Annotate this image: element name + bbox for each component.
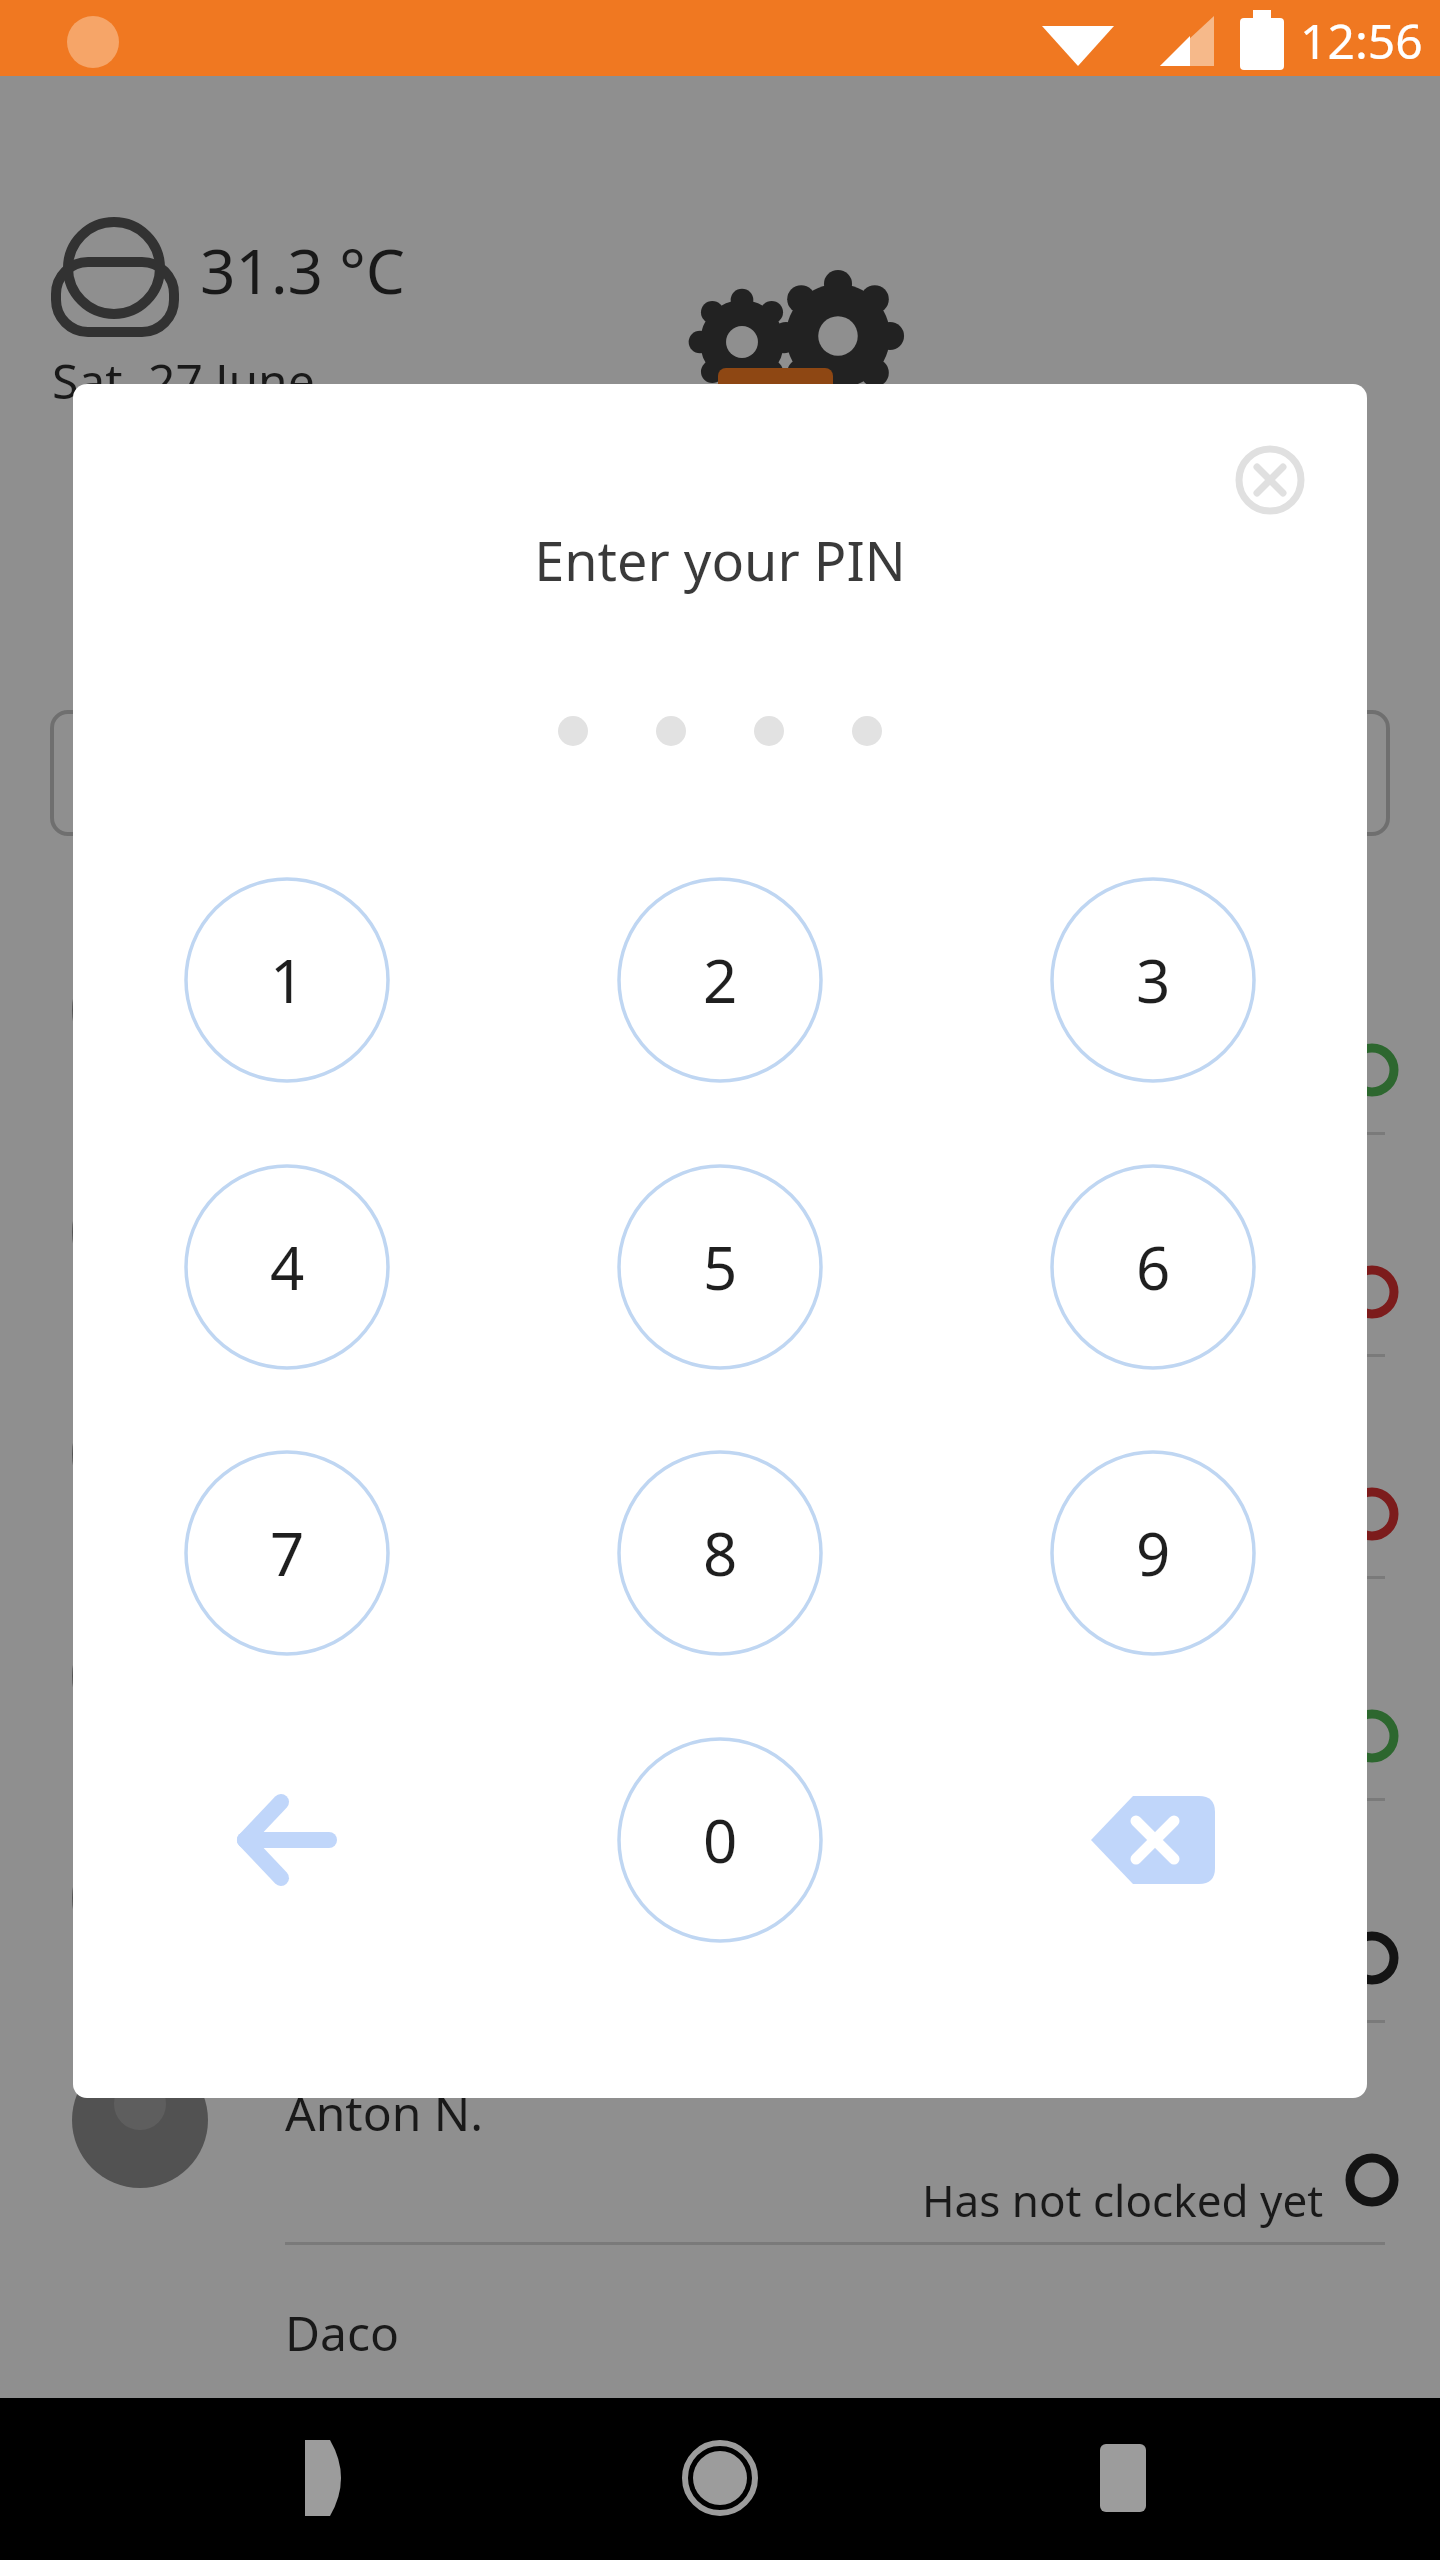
- staticText: Sat, 27 June: [52, 348, 315, 413]
- staticText: Enter your PIN: [534, 523, 906, 597]
- button[interactable]: Recents: [1000, 2398, 1240, 2560]
- staticText: 5: [703, 1226, 738, 1308]
- button[interactable]: 0: [619, 1739, 821, 1941]
- button[interactable]: Back: [186, 1739, 388, 1941]
- staticText: Has not clocked yet: [922, 2170, 1324, 2230]
- staticText: 3: [1136, 939, 1171, 1021]
- button[interactable]: 4: [186, 1166, 388, 1368]
- button[interactable]: 5: [619, 1166, 821, 1368]
- button[interactable]: 6: [1052, 1166, 1254, 1368]
- staticText: 6: [1136, 1226, 1171, 1308]
- button[interactable]: 2: [619, 879, 821, 1081]
- staticText: 31.3 °C: [200, 228, 405, 312]
- button[interactable]: 7: [186, 1452, 388, 1654]
- button[interactable]: Close: [1220, 430, 1320, 530]
- button[interactable]: 1: [186, 879, 388, 1081]
- staticText: 4: [270, 1226, 305, 1308]
- button[interactable]: Back: [230, 2398, 470, 2560]
- staticText: Anton N.: [285, 2080, 484, 2145]
- staticText: 2: [703, 939, 738, 1021]
- staticText: 9: [1136, 1512, 1171, 1594]
- staticText: 12:56: [1300, 8, 1423, 68]
- staticText: Daco: [285, 2300, 400, 2365]
- staticText: 0: [703, 1799, 738, 1881]
- button[interactable]: Delete: [1052, 1739, 1254, 1941]
- button[interactable]: 9: [1052, 1452, 1254, 1654]
- staticText: 8: [703, 1512, 738, 1594]
- button[interactable]: 3: [1052, 879, 1254, 1081]
- staticText: 7: [270, 1512, 305, 1594]
- button[interactable]: Home: [600, 2398, 840, 2560]
- staticText: 1: [270, 939, 305, 1021]
- button[interactable]: 8: [619, 1452, 821, 1654]
